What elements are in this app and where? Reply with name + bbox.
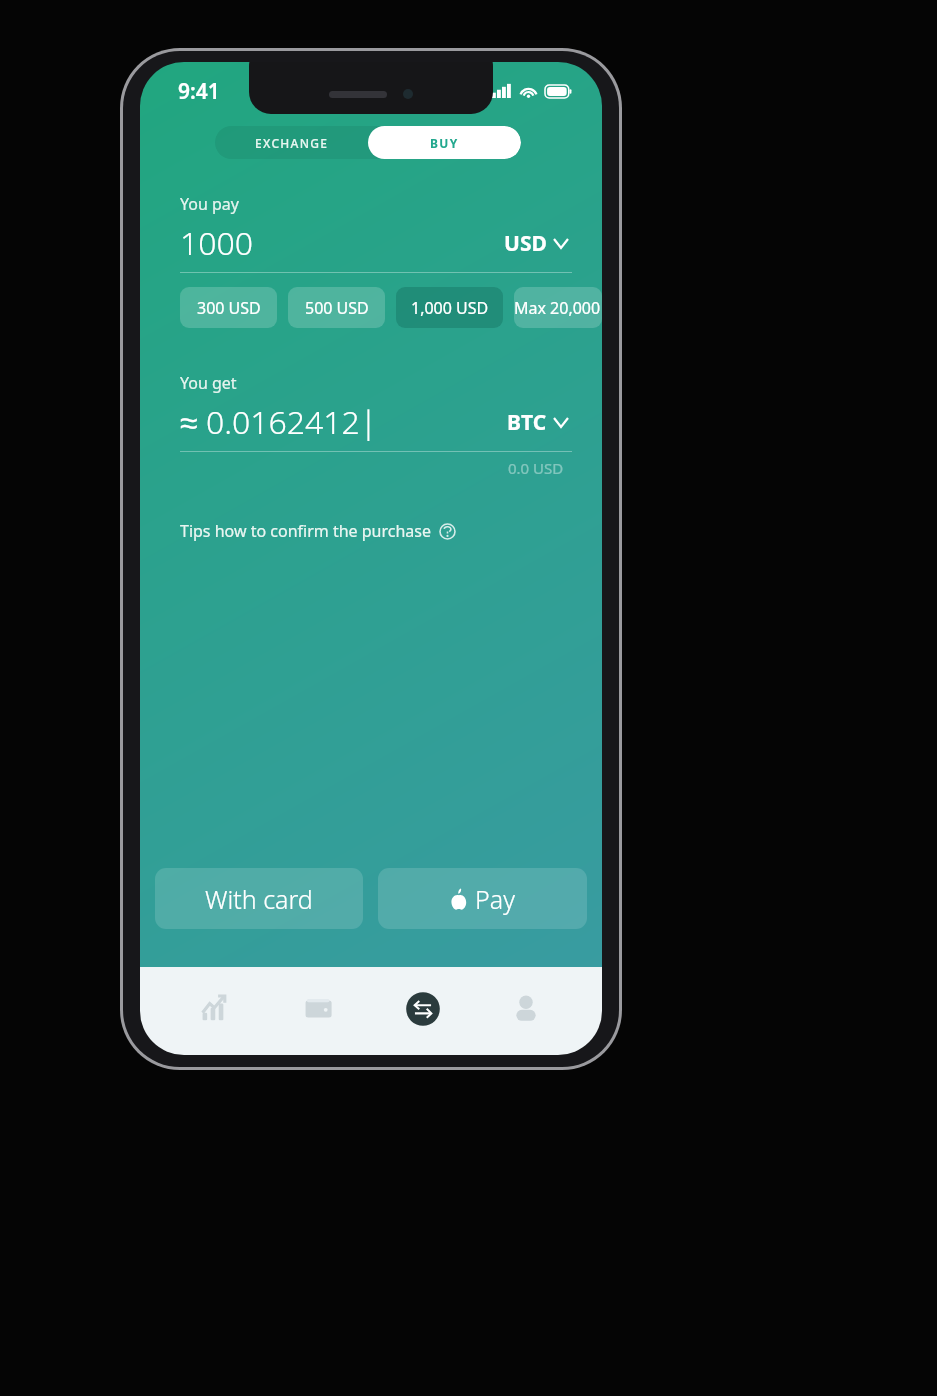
button[interactable]: Exchange: [395, 981, 451, 1037]
staticText: Tips how to confirm the purchase: [180, 520, 431, 542]
staticText: USD: [504, 229, 547, 258]
button[interactable]: USD: [500, 225, 572, 262]
button[interactable]: Wallet: [291, 981, 347, 1037]
staticText: 1,000 USD: [411, 297, 489, 319]
button[interactable]: 1,000 USD: [396, 287, 503, 328]
staticText: EXCHANGE: [255, 135, 329, 151]
staticText: 300 USD: [197, 297, 261, 319]
button[interactable]: With card: [155, 868, 363, 929]
staticText: You get: [180, 372, 237, 394]
staticText: BUY: [430, 135, 459, 151]
staticText: Pay: [475, 882, 515, 916]
button[interactable]: BTC: [503, 404, 572, 441]
button[interactable]: BUY: [368, 126, 521, 159]
staticText: ≈ 0.0162412|: [180, 400, 378, 444]
staticText: 500 USD: [305, 297, 369, 319]
staticText: 1000: [180, 221, 254, 265]
button[interactable]: Pay: [378, 868, 587, 929]
staticText: 9:41: [178, 77, 220, 106]
button[interactable]: EXCHANGE: [215, 126, 368, 159]
staticText: With card: [205, 882, 313, 916]
button[interactable]: Profile: [498, 981, 554, 1037]
staticText: 0.0 USD: [508, 458, 564, 478]
button[interactable]: 500 USD: [288, 287, 385, 328]
button[interactable]: Max 20,000 USD: [514, 287, 602, 328]
staticText: BTC: [507, 408, 547, 437]
button[interactable]: Markets: [188, 981, 244, 1037]
button[interactable]: Tips how to confirm the purchase: [180, 520, 456, 542]
staticText: You pay: [180, 193, 239, 215]
staticText: Max 20,000 USD: [514, 297, 602, 319]
button[interactable]: 300 USD: [180, 287, 277, 328]
